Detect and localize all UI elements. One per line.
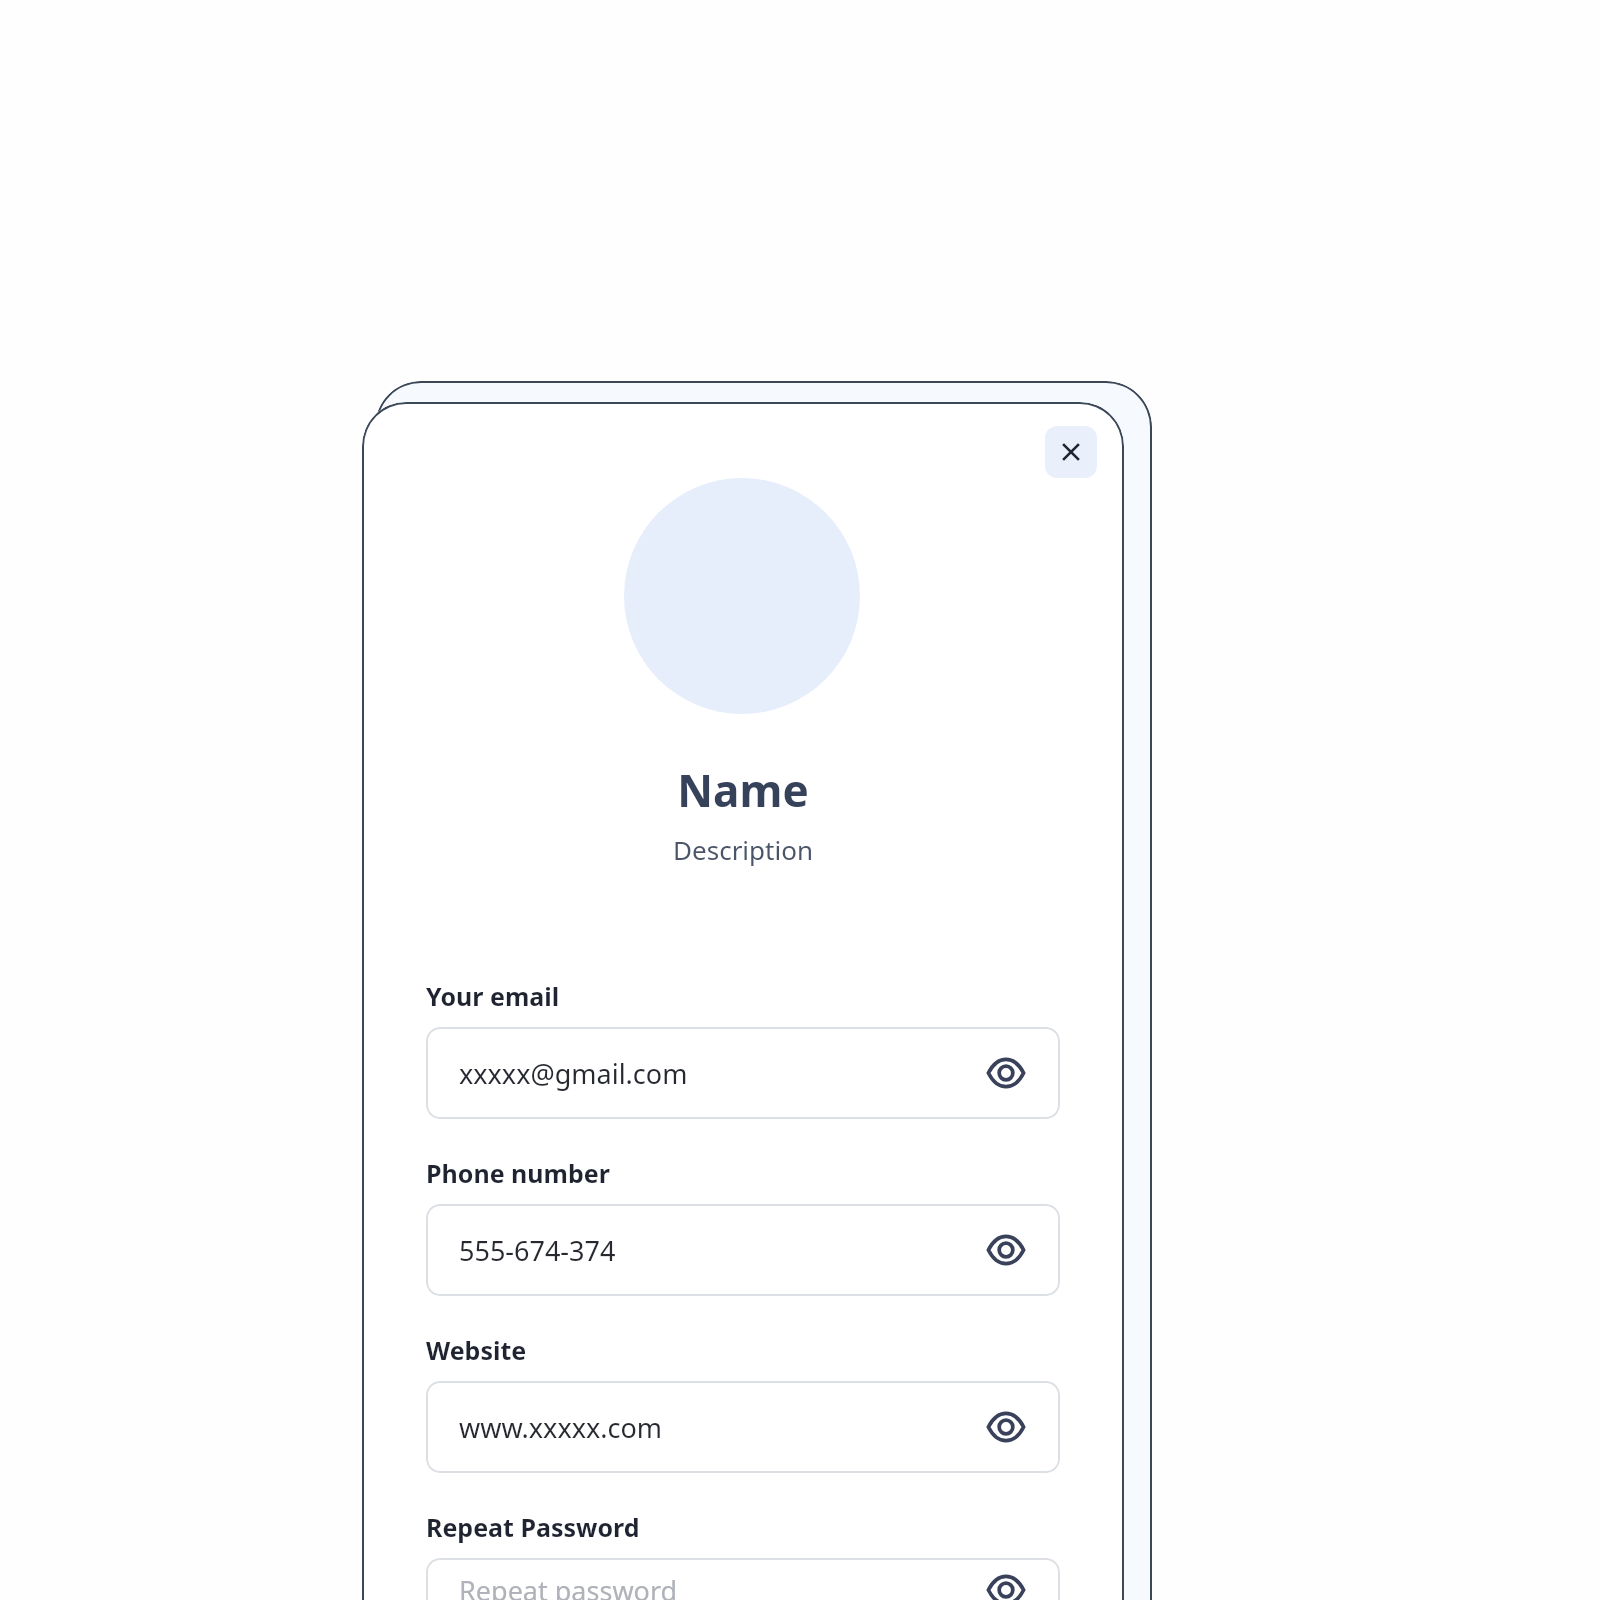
staticText: Your email <box>426 979 560 1013</box>
staticText: Website <box>426 1333 527 1367</box>
button[interactable]: Toggle visibility <box>980 1564 1032 1600</box>
button[interactable]: xxxxx@gmail.com <box>426 1027 1060 1119</box>
button[interactable]: Toggle visibility <box>980 1224 1032 1276</box>
staticText: www.xxxxx.com <box>459 1409 663 1446</box>
button[interactable]: 555-674-374 <box>426 1204 1060 1296</box>
staticText: Repeat password <box>459 1572 678 1600</box>
button[interactable]: Close <box>1045 426 1097 478</box>
staticText: 555-674-374 <box>459 1232 616 1269</box>
staticText: Phone number <box>426 1156 610 1190</box>
button[interactable]: www.xxxxx.com <box>426 1381 1060 1473</box>
staticText: Name <box>362 760 1124 820</box>
button[interactable]: Repeat password <box>426 1558 1060 1600</box>
button[interactable]: Toggle visibility <box>980 1401 1032 1453</box>
staticText: Repeat Password <box>426 1510 640 1544</box>
staticText: xxxxx@gmail.com <box>459 1055 688 1092</box>
staticText: Description <box>362 832 1124 867</box>
button[interactable]: Toggle visibility <box>980 1047 1032 1099</box>
